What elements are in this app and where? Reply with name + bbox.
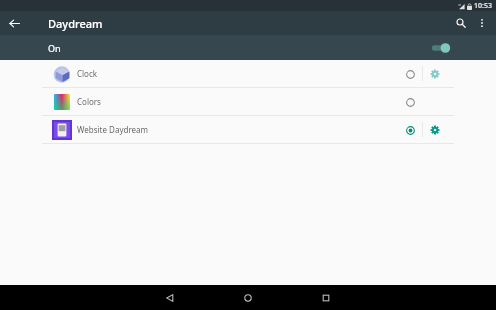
button[interactable]: Select Website Daydream (400, 120, 420, 140)
staticText: Daydream (48, 16, 103, 31)
button[interactable]: Back (150, 285, 190, 310)
button[interactable]: Select Colors (400, 92, 420, 112)
button[interactable]: Home (228, 285, 268, 310)
button[interactable]: Search (450, 12, 472, 34)
button[interactable]: On (0, 35, 496, 60)
staticText: Website Daydream (77, 124, 149, 135)
button[interactable]: Settings for Website Daydream (425, 120, 445, 140)
button[interactable]: Settings for Clock (425, 64, 445, 84)
staticText: Clock (77, 68, 98, 79)
staticText: On (48, 42, 61, 54)
button[interactable]: Clock (0, 60, 496, 87)
button[interactable]: Select Clock (400, 64, 420, 84)
staticText: 10:53 (474, 1, 492, 11)
staticText: Colors (77, 96, 101, 107)
button[interactable]: Back (4, 13, 24, 33)
button[interactable]: Website Daydream (0, 116, 496, 143)
button[interactable]: Recent apps (306, 285, 346, 310)
button[interactable]: Colors (0, 88, 496, 115)
button[interactable]: More options (472, 13, 492, 33)
